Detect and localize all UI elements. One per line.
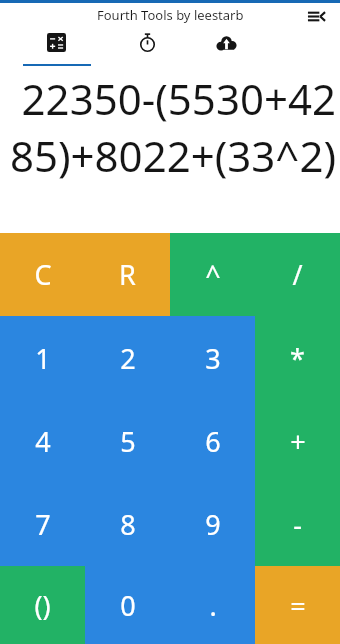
button[interactable]: 3: [170, 316, 255, 400]
staticText: 22350-(5530+4285)+8022+(33^2): [4, 70, 336, 184]
staticText: 0: [120, 587, 136, 624]
staticText: *: [290, 340, 305, 377]
staticText: 6: [205, 423, 221, 460]
staticText: ^: [205, 256, 221, 293]
staticText: =: [290, 587, 306, 624]
button[interactable]: Calculator tab: [0, 26, 113, 66]
button[interactable]: +: [255, 400, 340, 483]
staticText: 9: [205, 506, 221, 543]
button[interactable]: R: [85, 233, 170, 316]
staticText: Fourth Tools by leestarb: [97, 6, 244, 24]
button[interactable]: *: [255, 316, 340, 400]
staticText: 1: [35, 340, 51, 377]
button[interactable]: 0: [85, 566, 170, 644]
button[interactable]: (): [0, 566, 85, 644]
staticText: 4: [35, 423, 51, 460]
staticText: +: [290, 423, 306, 460]
button[interactable]: C: [0, 233, 85, 316]
staticText: 5: [120, 423, 136, 460]
button[interactable]: -: [255, 483, 340, 566]
staticText: 7: [35, 506, 51, 543]
staticText: R: [119, 256, 136, 293]
staticText: C: [34, 256, 52, 293]
button[interactable]: 5: [85, 400, 170, 483]
staticText: .: [209, 587, 217, 624]
button[interactable]: Upload tab: [181, 26, 271, 66]
button[interactable]: 2: [85, 316, 170, 400]
button[interactable]: Timer tab: [113, 26, 181, 66]
button[interactable]: 1: [0, 316, 85, 400]
button[interactable]: Menu: [302, 5, 330, 28]
staticText: -: [293, 506, 302, 543]
button[interactable]: /: [255, 233, 340, 316]
staticText: 2: [120, 340, 136, 377]
staticText: /: [292, 256, 303, 293]
button[interactable]: .: [170, 566, 255, 644]
staticText: 3: [205, 340, 221, 377]
button[interactable]: =: [255, 566, 340, 644]
button[interactable]: 6: [170, 400, 255, 483]
button[interactable]: 8: [85, 483, 170, 566]
button[interactable]: 9: [170, 483, 255, 566]
staticText: 8: [120, 506, 136, 543]
button[interactable]: ^: [170, 233, 255, 316]
button[interactable]: 7: [0, 483, 85, 566]
staticText: (): [34, 587, 51, 624]
button[interactable]: 4: [0, 400, 85, 483]
